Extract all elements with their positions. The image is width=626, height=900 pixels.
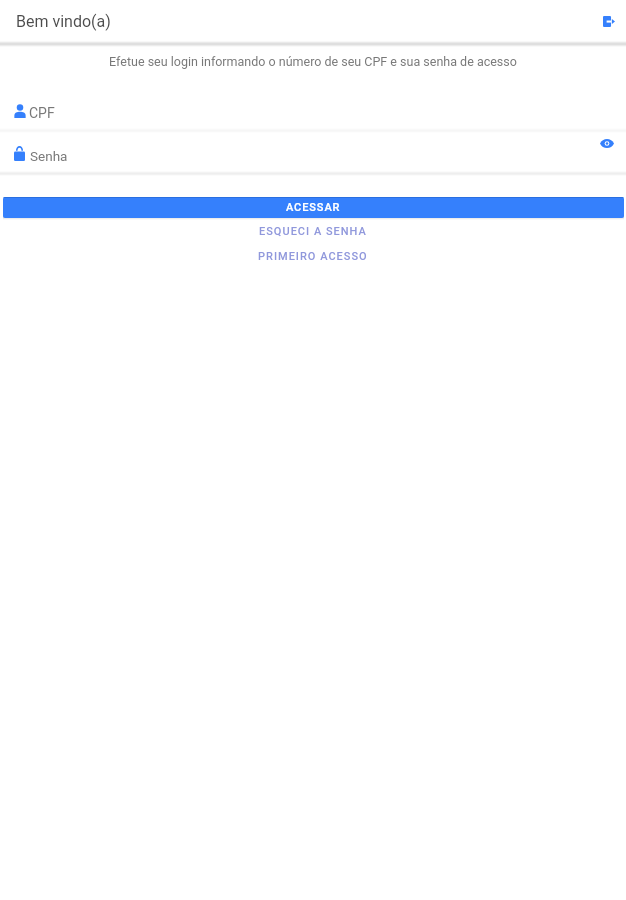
button[interactable]: ACESSAR <box>3 197 624 218</box>
staticText: Senha <box>30 148 68 164</box>
button[interactable]: ESQUECI A SENHA <box>0 219 626 243</box>
staticText: Bem vindo(a) <box>16 12 111 31</box>
staticText: Efetue seu login informando o número de … <box>0 54 626 69</box>
button[interactable]: Entrar <box>595 8 622 35</box>
staticText: CPF <box>29 105 55 121</box>
button[interactable]: PRIMEIRO ACESSO <box>0 244 626 268</box>
staticText: ESQUECI A SENHA <box>259 225 367 238</box>
button[interactable]: Senha <box>0 141 626 171</box>
button[interactable]: Mostrar senha <box>594 130 620 156</box>
staticText: PRIMEIRO ACESSO <box>258 250 368 263</box>
staticText: ACESSAR <box>286 201 341 214</box>
button[interactable]: CPF <box>0 97 626 128</box>
